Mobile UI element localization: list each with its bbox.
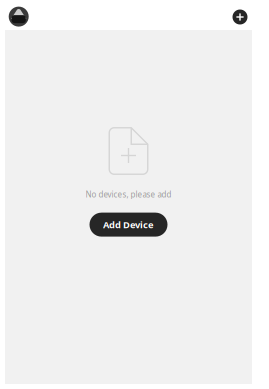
button[interactable]: Add Device — [89, 213, 167, 237]
button[interactable]: Profile — [4, 2, 34, 32]
staticText: No devices, please add — [85, 189, 171, 200]
staticText: Add Device — [103, 218, 154, 231]
button[interactable]: Add device — [225, 2, 255, 32]
